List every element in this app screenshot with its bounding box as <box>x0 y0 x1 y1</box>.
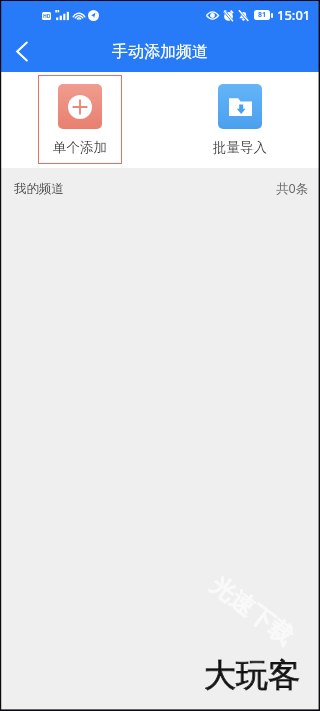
staticText: 共0条 <box>276 180 309 197</box>
button[interactable]: 单个添加 <box>38 75 122 164</box>
staticText: 批量导入 <box>213 139 267 156</box>
staticText: 我的频道 <box>14 181 64 197</box>
staticText: HD <box>43 13 51 20</box>
staticText: 15:01 <box>277 6 311 24</box>
staticText: 81 <box>258 10 267 20</box>
staticText: 单个添加 <box>53 139 107 156</box>
button[interactable]: Back <box>0 30 44 72</box>
staticText: 大玩客 <box>204 655 300 695</box>
button[interactable]: 批量导入 <box>198 75 282 164</box>
staticText: 手动添加频道 <box>112 42 208 62</box>
staticText: 大玩客 <box>204 655 300 695</box>
staticText: 光速下载 <box>205 570 299 652</box>
